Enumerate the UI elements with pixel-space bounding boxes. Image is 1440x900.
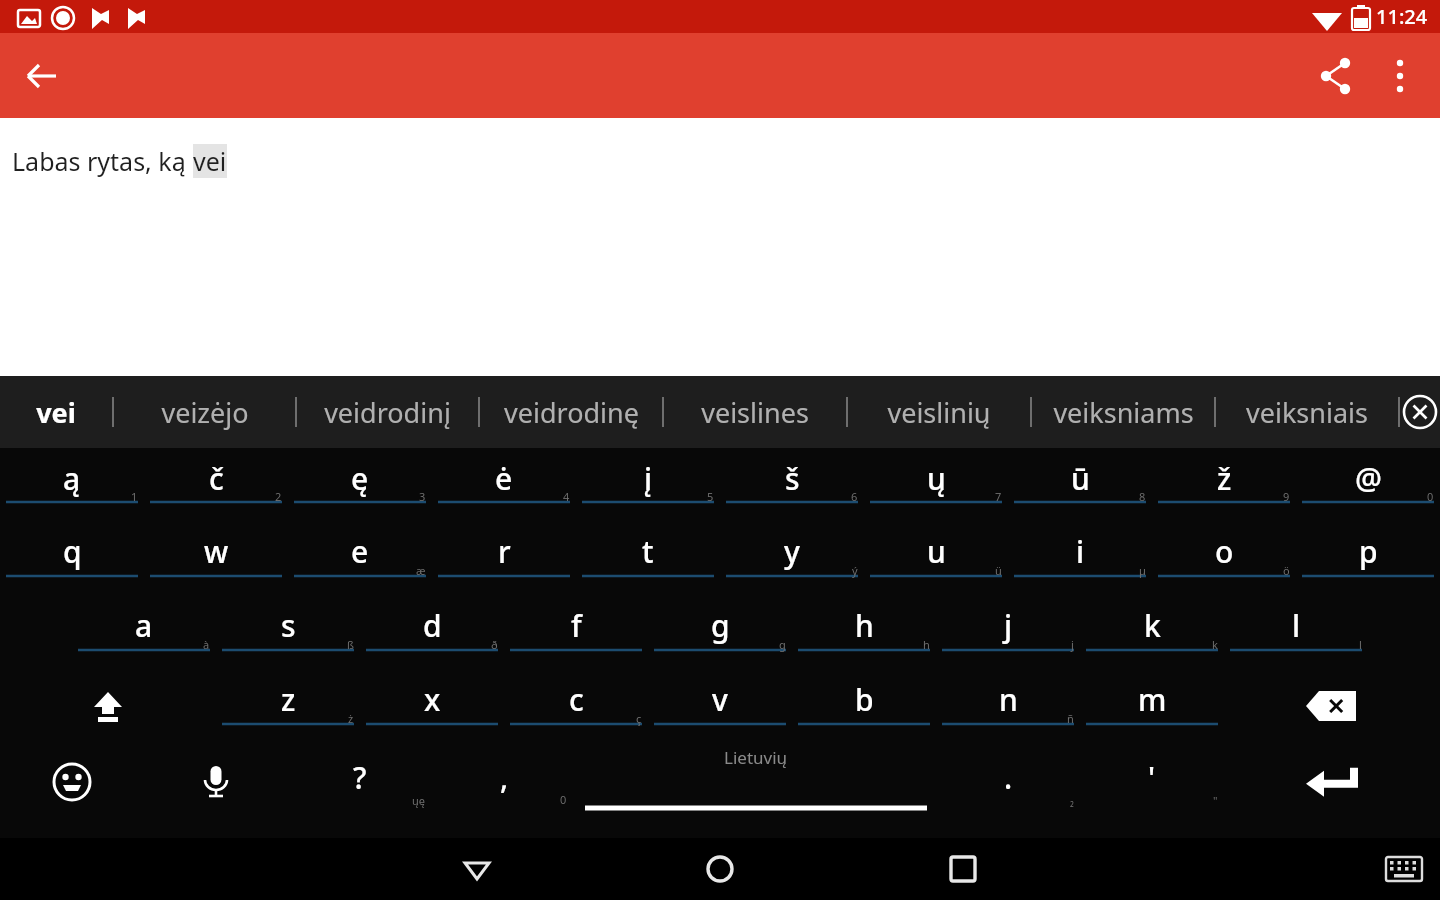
staticText: a bbox=[135, 605, 153, 646]
button[interactable]: q bbox=[0, 520, 144, 594]
button[interactable]: d bbox=[360, 594, 504, 668]
button[interactable]: @ bbox=[1296, 448, 1440, 520]
button[interactable]: Switch keyboard bbox=[1378, 847, 1430, 891]
button[interactable]: Home bbox=[684, 838, 756, 900]
staticText: h bbox=[923, 637, 930, 652]
button[interactable]: veiksniams bbox=[1032, 376, 1214, 448]
button[interactable]: č bbox=[144, 448, 288, 520]
staticText: @ bbox=[1355, 458, 1382, 499]
button[interactable]: veizėjo bbox=[114, 376, 295, 448]
staticText: g bbox=[711, 605, 730, 646]
staticText: ₂ bbox=[1070, 793, 1074, 808]
button[interactable]: į bbox=[576, 448, 720, 520]
staticText: y bbox=[784, 531, 800, 572]
staticText: veidrodinę bbox=[504, 394, 639, 431]
button[interactable]: b bbox=[792, 668, 936, 742]
button[interactable]: y bbox=[720, 520, 864, 594]
staticText: į bbox=[644, 458, 653, 499]
button[interactable]: n bbox=[936, 668, 1080, 742]
button[interactable]: r bbox=[432, 520, 576, 594]
button[interactable]: ž bbox=[1152, 448, 1296, 520]
staticText: ? bbox=[353, 757, 367, 798]
staticText: l bbox=[1359, 637, 1362, 652]
button[interactable]: , bbox=[432, 746, 576, 816]
button[interactable]: h bbox=[792, 594, 936, 668]
staticText: j bbox=[1004, 605, 1013, 646]
staticText: x bbox=[424, 679, 441, 720]
button[interactable]: c bbox=[504, 668, 648, 742]
button[interactable]: s bbox=[216, 594, 360, 668]
staticText: l bbox=[1292, 605, 1301, 646]
staticText: . bbox=[1004, 757, 1013, 798]
button[interactable]: l bbox=[1224, 594, 1368, 668]
button[interactable]: u bbox=[864, 520, 1008, 594]
button[interactable]: Share bbox=[1304, 44, 1368, 108]
button[interactable]: . bbox=[936, 746, 1080, 816]
button[interactable]: Recent apps bbox=[927, 838, 999, 900]
staticText: 0 bbox=[1427, 489, 1434, 504]
staticText: 7 bbox=[995, 489, 1002, 504]
button[interactable]: x bbox=[360, 668, 504, 742]
staticText: Labas rytas, ką bbox=[12, 144, 193, 178]
button[interactable]: Enter bbox=[1282, 750, 1382, 814]
staticText: ę bbox=[351, 458, 369, 499]
button[interactable]: t bbox=[576, 520, 720, 594]
staticText: r bbox=[498, 531, 511, 572]
button[interactable]: ė bbox=[432, 448, 576, 520]
staticText: z bbox=[281, 679, 296, 720]
staticText: ū bbox=[1071, 458, 1090, 499]
staticText: ė bbox=[495, 458, 513, 499]
button[interactable]: veislinių bbox=[848, 376, 1030, 448]
staticText: veiksniams bbox=[1053, 394, 1194, 431]
button[interactable]: e bbox=[288, 520, 432, 594]
button[interactable]: Emoji bbox=[22, 750, 122, 814]
button[interactable]: ą bbox=[0, 448, 144, 520]
button[interactable]: w bbox=[144, 520, 288, 594]
button[interactable]: v bbox=[648, 668, 792, 742]
staticText: ą bbox=[63, 458, 81, 499]
button[interactable]: j bbox=[936, 594, 1080, 668]
button[interactable]: veidrodinę bbox=[480, 376, 662, 448]
button[interactable]: o bbox=[1152, 520, 1296, 594]
staticText: ö bbox=[1283, 563, 1290, 578]
button[interactable]: Shift bbox=[58, 676, 158, 736]
button[interactable]: ū bbox=[1008, 448, 1152, 520]
button[interactable]: a bbox=[72, 594, 216, 668]
staticText: ñ bbox=[1067, 711, 1074, 726]
button[interactable]: f bbox=[504, 594, 648, 668]
staticText: m bbox=[1138, 679, 1167, 720]
button[interactable]: š bbox=[720, 448, 864, 520]
button[interactable]: More options bbox=[1368, 44, 1432, 108]
button[interactable]: Close suggestions bbox=[1400, 376, 1440, 448]
button[interactable]: veislines bbox=[664, 376, 846, 448]
button[interactable]: ę bbox=[288, 448, 432, 520]
staticText: n bbox=[999, 679, 1018, 720]
button[interactable]: m bbox=[1080, 668, 1224, 742]
button[interactable]: ? bbox=[288, 746, 432, 816]
button[interactable]: Space bbox=[576, 744, 936, 816]
button[interactable]: ų bbox=[864, 448, 1008, 520]
staticText: ž bbox=[1217, 458, 1232, 499]
staticText: ' bbox=[1148, 757, 1156, 798]
staticText: veislinių bbox=[887, 394, 991, 431]
staticText: ç bbox=[636, 711, 642, 726]
button[interactable]: vei bbox=[0, 376, 112, 448]
button[interactable]: Backspace bbox=[1282, 676, 1382, 736]
button[interactable]: Voice input bbox=[166, 750, 266, 814]
staticText: e bbox=[351, 531, 369, 572]
button[interactable]: Hide keyboard bbox=[441, 838, 513, 900]
button[interactable]: p bbox=[1296, 520, 1440, 594]
button[interactable]: Back bbox=[10, 44, 74, 108]
staticText: Lietuvių bbox=[724, 746, 788, 769]
button[interactable]: veiksniais bbox=[1216, 376, 1398, 448]
button[interactable]: z bbox=[216, 668, 360, 742]
button[interactable]: i bbox=[1008, 520, 1152, 594]
staticText: 0 bbox=[560, 792, 567, 807]
staticText: č bbox=[209, 458, 224, 499]
button[interactable]: g bbox=[648, 594, 792, 668]
button[interactable]: ' bbox=[1080, 746, 1224, 816]
staticText: vei bbox=[193, 144, 227, 178]
button[interactable]: k bbox=[1080, 594, 1224, 668]
button[interactable]: veidrodinį bbox=[297, 376, 478, 448]
staticText: 8 bbox=[1139, 489, 1146, 504]
